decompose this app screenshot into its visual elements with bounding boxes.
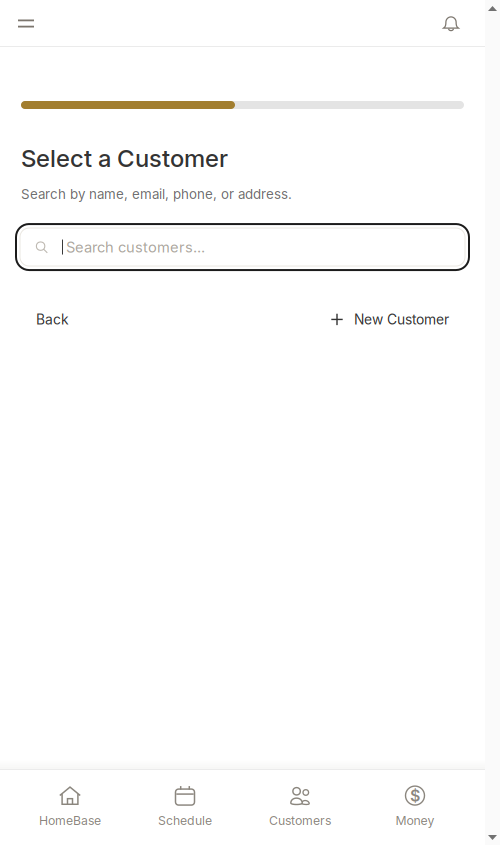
staticText: HomeBase <box>39 813 101 828</box>
button[interactable]: Back <box>21 302 84 337</box>
staticText: Search by name, email, phone, or address… <box>21 186 292 202</box>
button[interactable]: New Customer <box>316 302 464 337</box>
button[interactable]: Schedule <box>127 772 242 842</box>
staticText: Search customers... <box>66 238 205 256</box>
button[interactable]: Customers <box>242 772 357 842</box>
button[interactable]: $ <box>357 772 472 842</box>
staticText: $ <box>410 786 420 805</box>
staticText: New Customer <box>354 311 449 328</box>
staticText: Back <box>36 311 69 328</box>
staticText: Select a Customer <box>21 144 228 172</box>
button[interactable]: Notifications <box>434 6 468 40</box>
staticText: Money <box>395 813 434 828</box>
button[interactable]: Menu <box>9 6 43 40</box>
button[interactable]: HomeBase <box>12 772 127 842</box>
staticText: Customers <box>269 813 331 828</box>
staticText: Schedule <box>158 813 212 828</box>
